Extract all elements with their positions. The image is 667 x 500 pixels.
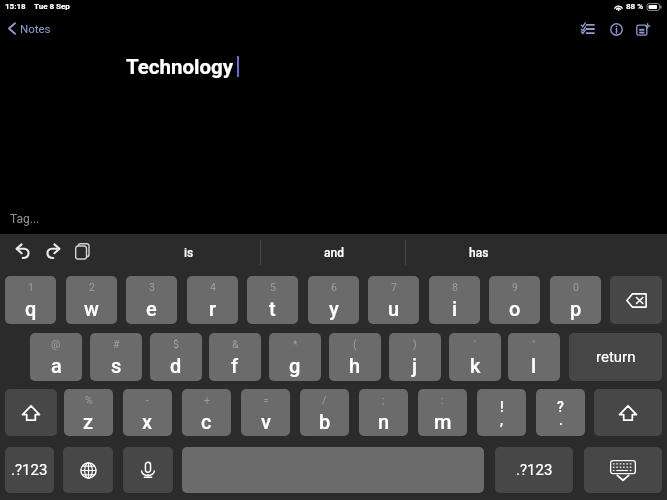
- button[interactable]: +: [182, 389, 231, 436]
- button[interactable]: ;: [359, 389, 408, 436]
- staticText: #: [113, 338, 120, 350]
- staticText: f: [231, 354, 239, 377]
- button[interactable]: *: [269, 333, 321, 381]
- staticText: y: [329, 297, 339, 320]
- button[interactable]: New note: [634, 18, 652, 40]
- button[interactable]: /: [300, 389, 349, 436]
- button[interactable]: 6: [308, 276, 359, 324]
- button[interactable]: &: [209, 333, 261, 381]
- staticText: %: [85, 394, 93, 406]
- staticText: +: [204, 394, 210, 406]
- button[interactable]: $: [150, 333, 202, 381]
- staticText: .?123: [516, 461, 553, 479]
- staticText: 6: [331, 281, 337, 293]
- staticText: z: [83, 410, 94, 433]
- button[interactable]: @: [30, 333, 82, 381]
- staticText: t: [269, 297, 276, 320]
- staticText: ': [474, 338, 476, 350]
- staticText: *: [293, 338, 298, 350]
- button[interactable]: Notes: [8, 17, 51, 39]
- button[interactable]: %: [64, 389, 113, 436]
- staticText: :: [441, 394, 444, 406]
- button[interactable]: 3: [126, 276, 177, 324]
- button[interactable]: (: [329, 333, 381, 381]
- button[interactable]: 8: [429, 276, 480, 324]
- button[interactable]: Redo: [40, 238, 66, 264]
- staticText: 8: [452, 281, 458, 293]
- staticText: (: [353, 338, 357, 350]
- button[interactable]: Info: [607, 18, 625, 40]
- staticText: and: [324, 246, 344, 260]
- staticText: is: [184, 246, 194, 260]
- button[interactable]: 7: [368, 276, 419, 324]
- button[interactable]: 0: [550, 276, 601, 324]
- button[interactable]: :: [418, 389, 467, 436]
- staticText: v: [261, 410, 271, 433]
- staticText: n: [378, 410, 390, 433]
- staticText: @: [51, 338, 61, 350]
- button[interactable]: Paste: [69, 238, 95, 264]
- button[interactable]: Next keyboard: [63, 447, 113, 493]
- staticText: Tue 8 Sep: [34, 2, 70, 11]
- staticText: p: [570, 297, 582, 320]
- button[interactable]: and: [261, 237, 406, 269]
- staticText: i: [452, 297, 458, 320]
- staticText: d: [170, 354, 182, 377]
- button[interactable]: 1: [5, 276, 56, 324]
- staticText: 3: [149, 281, 155, 293]
- staticText: ": [532, 338, 536, 350]
- button[interactable]: #: [90, 333, 142, 381]
- staticText: q: [25, 297, 37, 320]
- staticText: has: [469, 246, 489, 260]
- button[interactable]: Shift: [594, 389, 662, 436]
- staticText: ): [413, 338, 417, 350]
- button[interactable]: =: [241, 389, 290, 436]
- staticText: ?: [557, 399, 564, 415]
- staticText: h: [349, 354, 361, 377]
- staticText: c: [201, 410, 212, 433]
- staticText: &: [232, 338, 239, 350]
- button[interactable]: .?123: [5, 447, 54, 493]
- button[interactable]: return: [569, 333, 662, 381]
- staticText: /: [322, 394, 327, 406]
- button[interactable]: Backspace: [610, 276, 662, 324]
- staticText: 0: [573, 281, 579, 293]
- button[interactable]: is: [116, 237, 261, 269]
- button[interactable]: ?: [536, 389, 585, 436]
- button[interactable]: 2: [66, 276, 117, 324]
- staticText: return: [596, 348, 636, 366]
- staticText: u: [388, 297, 400, 320]
- button[interactable]: 4: [187, 276, 238, 324]
- button[interactable]: ": [508, 333, 560, 381]
- staticText: 88 %: [626, 2, 644, 11]
- button[interactable]: Checklist: [578, 18, 596, 40]
- staticText: 5: [270, 281, 276, 293]
- button[interactable]: Hide keyboard: [584, 447, 662, 493]
- button[interactable]: ': [449, 333, 501, 381]
- staticText: a: [51, 354, 62, 377]
- staticText: w: [84, 297, 99, 320]
- staticText: x: [142, 410, 153, 433]
- button[interactable]: -: [123, 389, 172, 436]
- button[interactable]: Undo: [10, 238, 36, 264]
- staticText: e: [146, 297, 157, 320]
- staticText: 9: [512, 281, 518, 293]
- button[interactable]: ): [389, 333, 441, 381]
- staticText: r: [209, 297, 217, 320]
- button[interactable]: !: [477, 389, 526, 436]
- staticText: 2: [89, 281, 95, 293]
- staticText: l: [531, 354, 537, 377]
- button[interactable]: 5: [247, 276, 298, 324]
- staticText: .: [559, 412, 563, 428]
- staticText: 1: [28, 281, 34, 293]
- button[interactable]: Dictation: [123, 447, 173, 493]
- staticText: 4: [210, 281, 216, 293]
- button[interactable]: .?123: [495, 447, 573, 493]
- staticText: .?123: [11, 461, 48, 479]
- button[interactable]: Shift: [5, 389, 57, 436]
- button[interactable]: has: [406, 237, 551, 269]
- button[interactable]: 9: [489, 276, 540, 324]
- staticText: o: [509, 297, 521, 320]
- staticText: s: [111, 354, 122, 377]
